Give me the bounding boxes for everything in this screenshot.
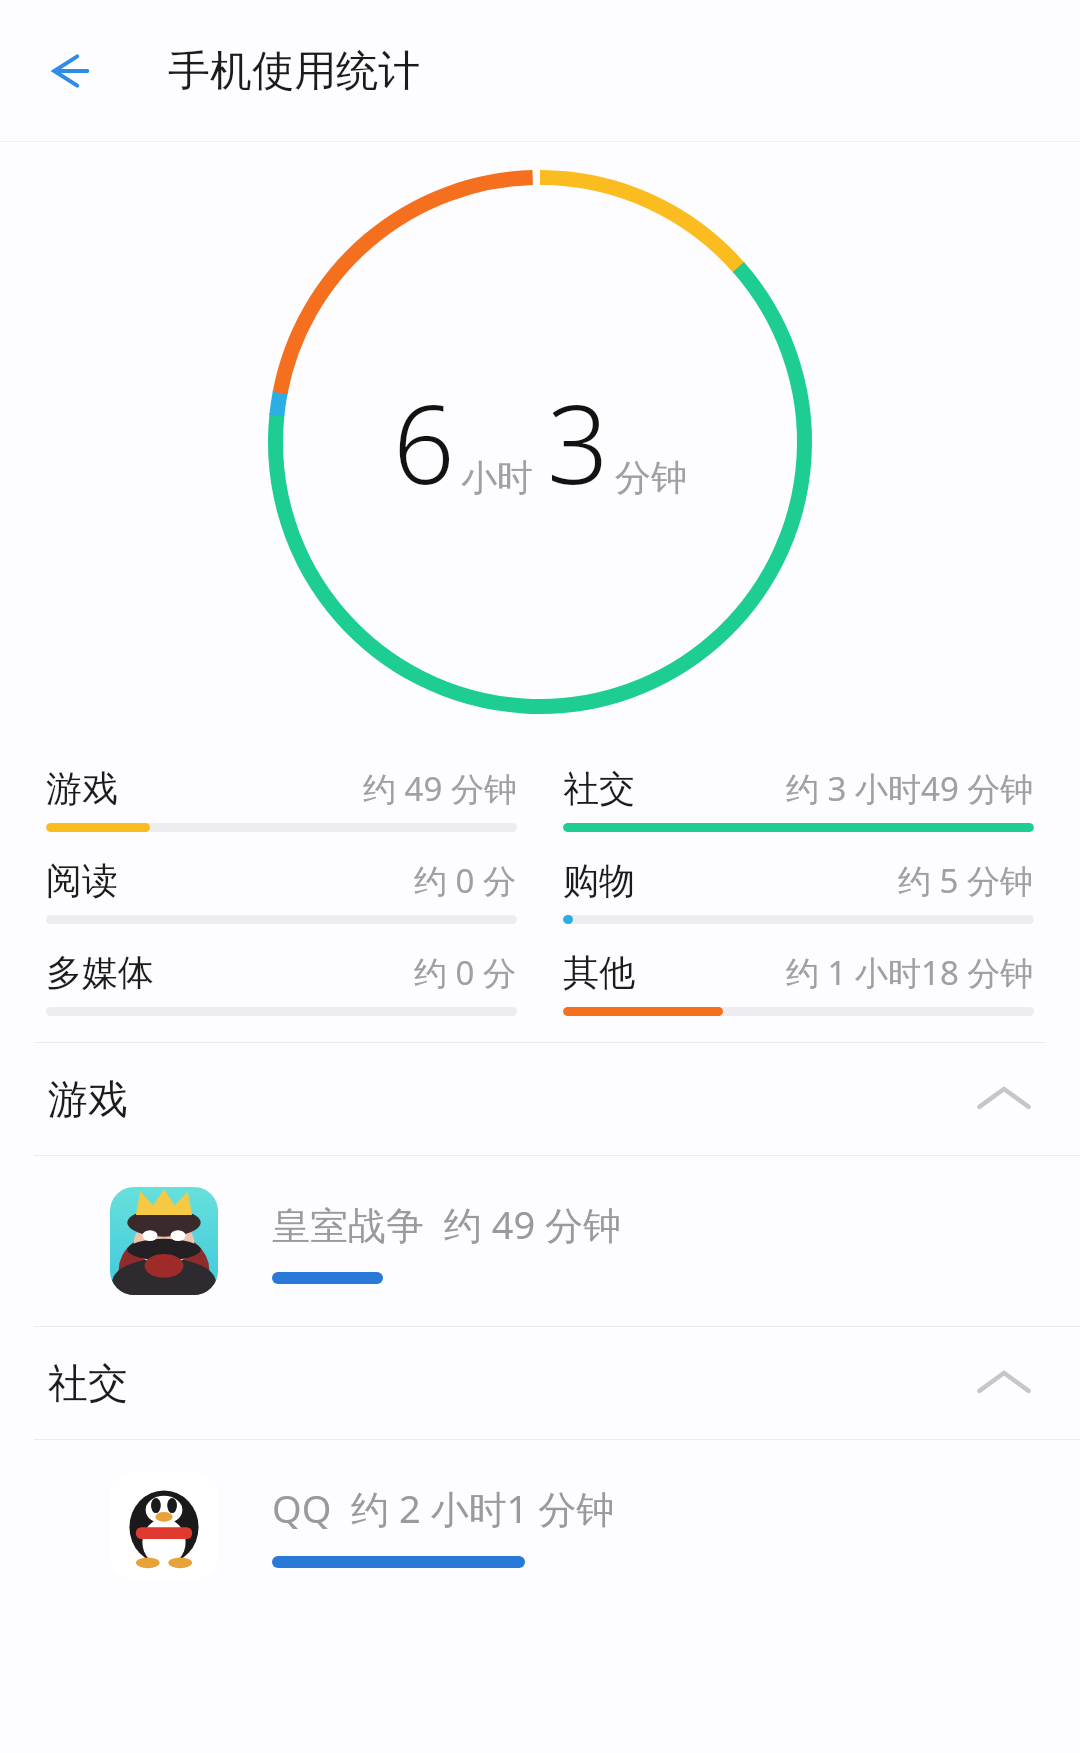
button[interactable]: Back — [32, 35, 104, 107]
staticText: 游戏 — [46, 766, 118, 811]
other: Collapse — [972, 1067, 1036, 1131]
staticText: 其他 — [563, 950, 635, 995]
staticText: 约 5 分钟 — [898, 858, 1034, 903]
button[interactable]: 游戏 — [46, 766, 517, 832]
staticText: 小时 — [461, 455, 533, 500]
staticText: 约 0 分 — [414, 858, 517, 903]
button[interactable]: 多媒体 — [46, 950, 517, 1016]
staticText: QQ 约 2 小时1 分钟 — [272, 1482, 615, 1534]
staticText: 阅读 — [46, 858, 118, 903]
staticText: 社交 — [48, 1358, 128, 1408]
button[interactable]: 皇室战争 约 49 分钟 — [0, 1156, 1080, 1326]
other: Collapse — [972, 1351, 1036, 1415]
button[interactable]: QQ 约 2 小时1 分钟 — [0, 1440, 1080, 1610]
staticText: 多媒体 — [46, 950, 154, 995]
staticText: 社交 — [563, 766, 635, 811]
button[interactable]: 游戏 — [0, 1043, 1080, 1155]
staticText: 约 1 小时18 分钟 — [786, 950, 1034, 995]
staticText: 6 — [393, 369, 455, 516]
button[interactable]: 社交 — [0, 1327, 1080, 1439]
staticText: 皇室战争 约 49 分钟 — [272, 1198, 621, 1250]
button[interactable]: 阅读 — [46, 858, 517, 924]
button[interactable]: 购物 — [563, 858, 1034, 924]
staticText: 3 — [547, 369, 609, 516]
staticText: 约 49 分钟 — [363, 766, 517, 811]
staticText: 分钟 — [615, 455, 687, 500]
staticText: 手机使用统计 — [168, 45, 420, 98]
staticText: 购物 — [563, 858, 635, 903]
button[interactable]: 社交 — [563, 766, 1034, 832]
staticText: 约 3 小时49 分钟 — [786, 766, 1034, 811]
staticText: 游戏 — [48, 1074, 128, 1124]
button[interactable]: 其他 — [563, 950, 1034, 1016]
staticText: 约 0 分 — [414, 950, 517, 995]
